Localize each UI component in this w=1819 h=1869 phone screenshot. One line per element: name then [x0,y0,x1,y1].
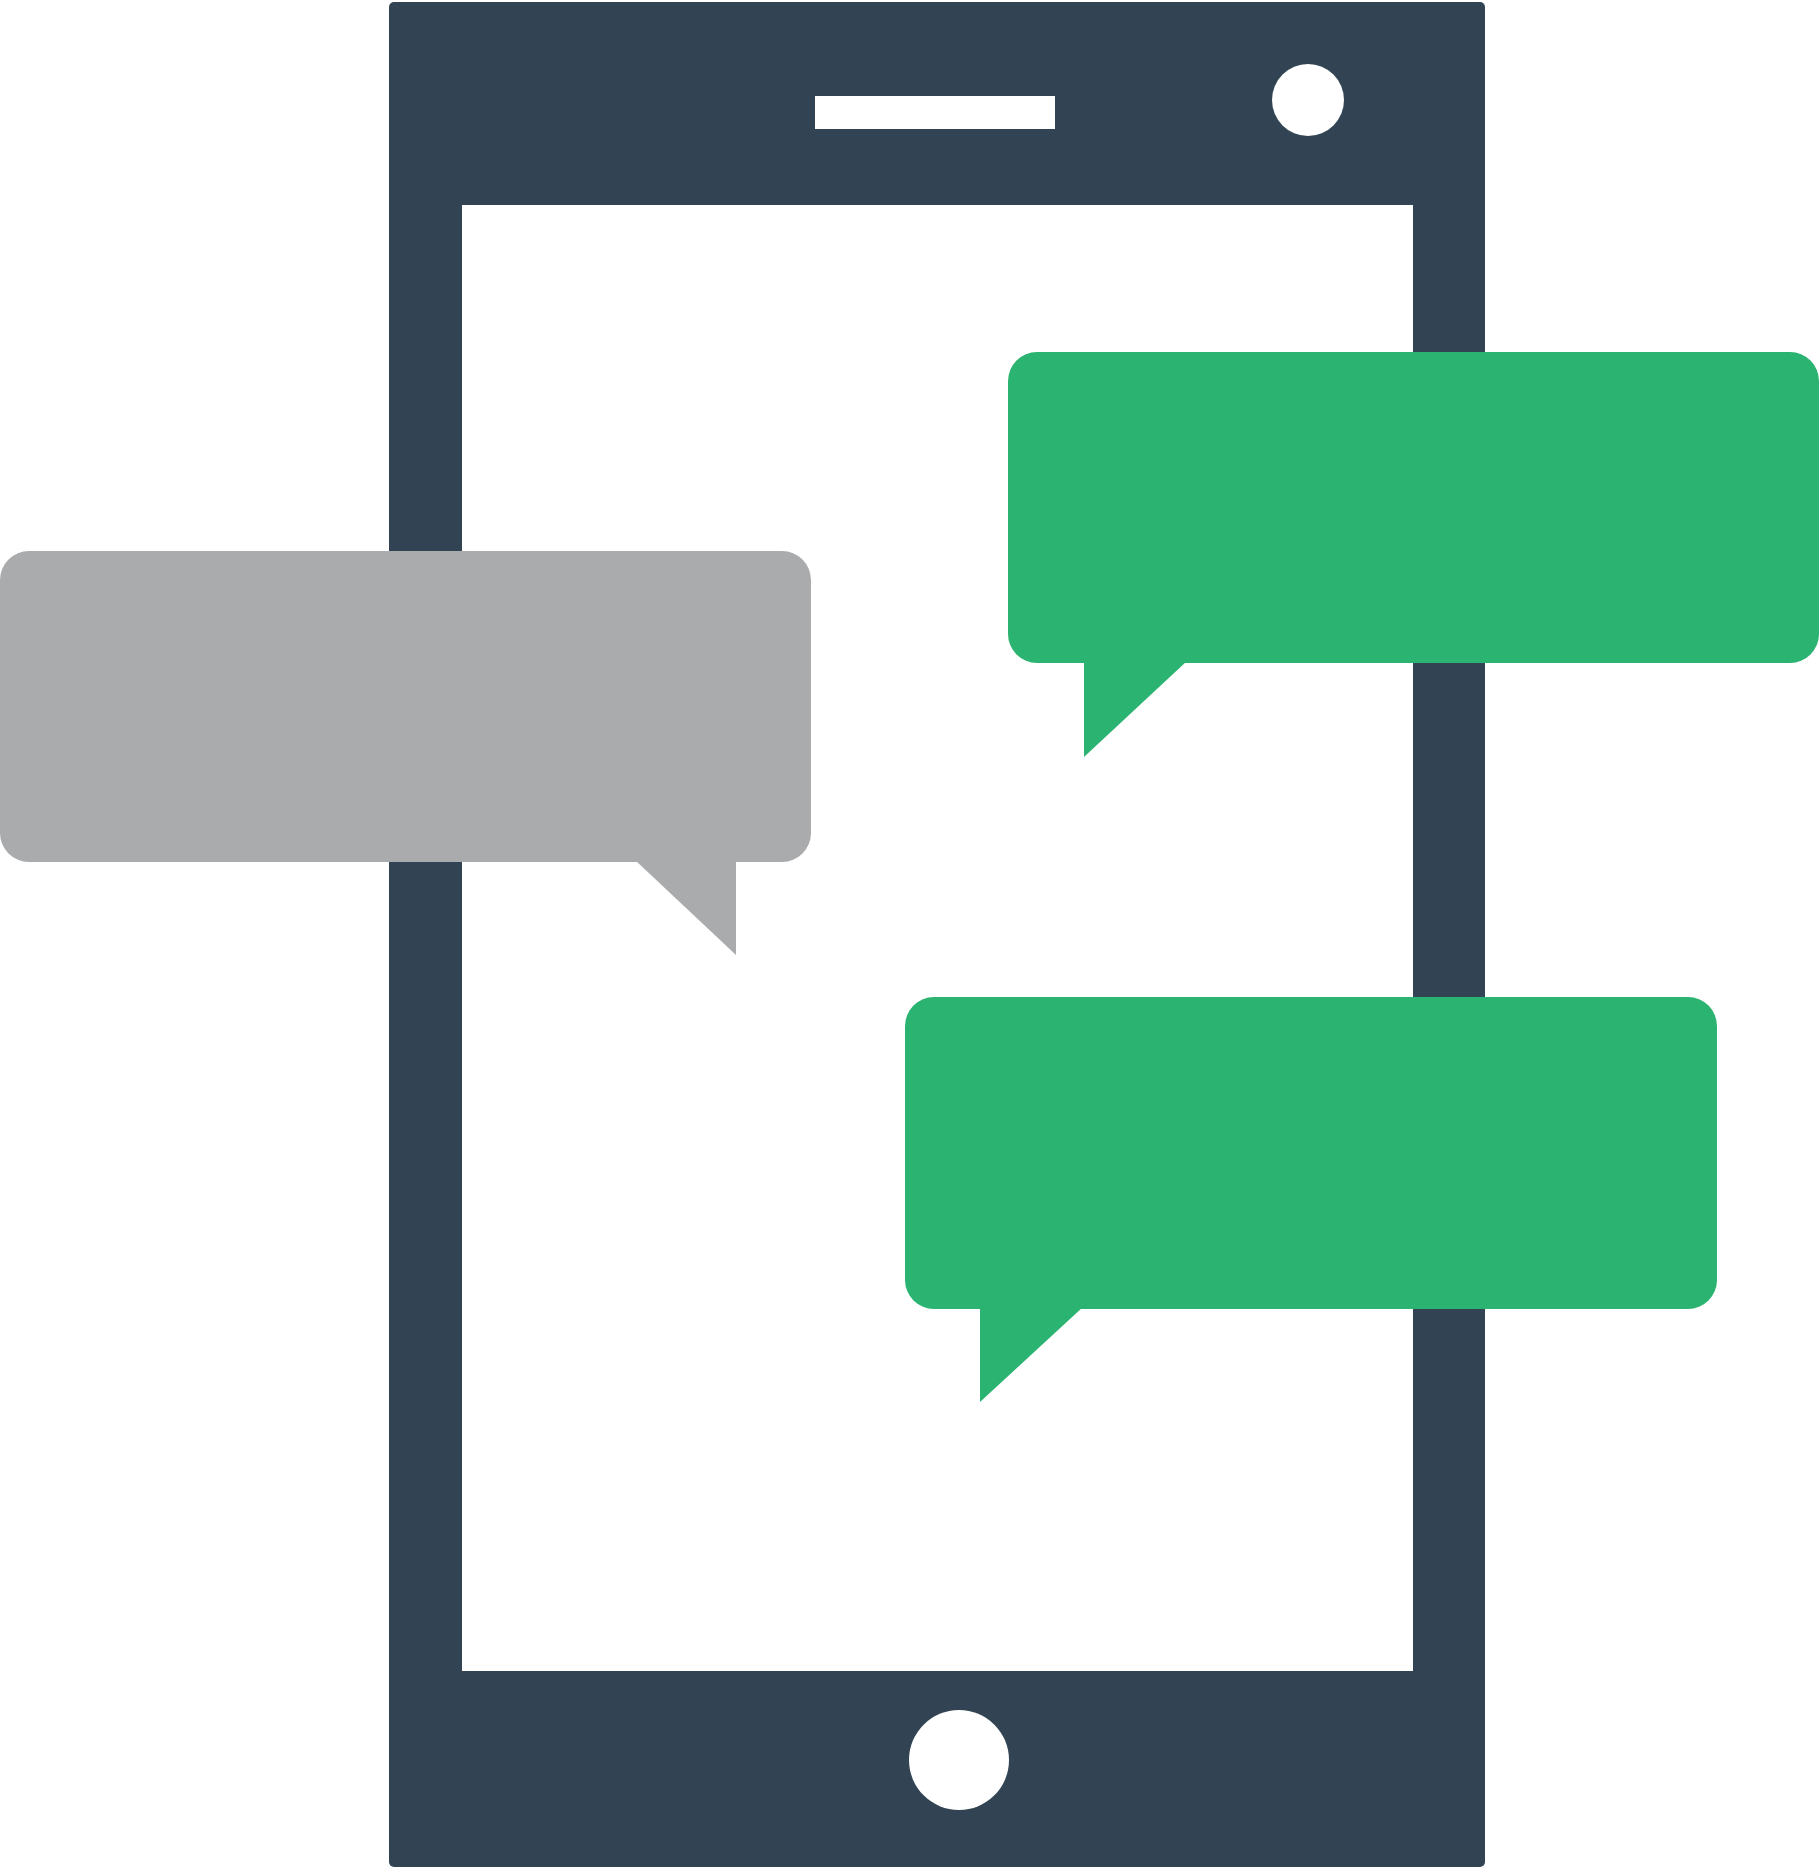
button[interactable]: Outgoing message [905,997,1717,1309]
button[interactable]: Outgoing message [1008,352,1819,663]
button[interactable]: Home [909,1710,1009,1810]
button[interactable]: Incoming message [0,551,811,862]
